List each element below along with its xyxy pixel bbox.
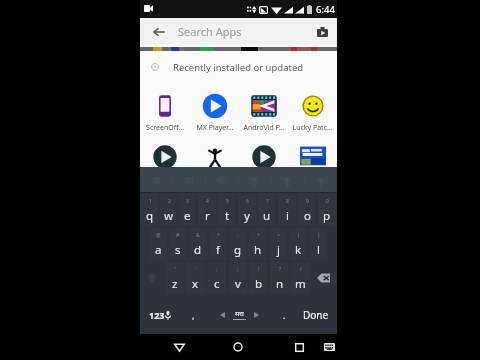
- button[interactable]: MX Player…: [190, 93, 239, 133]
- button[interactable]: /: [291, 262, 310, 294]
- staticText: ": [174, 266, 177, 273]
- staticText: r: [205, 208, 210, 224]
- button[interactable]: AndroVid P…: [239, 93, 288, 133]
- staticText: !: [258, 266, 260, 273]
- button[interactable]: ): [309, 228, 327, 260]
- staticText: c: [214, 276, 220, 292]
- staticText: 1: [149, 198, 152, 205]
- button[interactable]: Switch keyboard: [316, 334, 342, 360]
- staticText: u: [263, 208, 271, 224]
- staticText: Search Apps: [178, 24, 242, 39]
- staticText: 2: [168, 198, 171, 205]
- button[interactable]: =: [269, 228, 287, 260]
- button[interactable]: का: [172, 167, 205, 193]
- button[interactable]: 3: [179, 194, 196, 226]
- staticText: t: [225, 208, 230, 224]
- staticText: ,: [192, 309, 195, 321]
- staticText: e: [184, 208, 191, 224]
- button[interactable]: 8: [278, 194, 296, 226]
- staticText: कृ: [317, 174, 324, 186]
- button[interactable]: Lucky Patc…: [288, 93, 337, 133]
- button[interactable]: Back: [166, 334, 192, 360]
- staticText: z: [172, 276, 178, 292]
- button[interactable]: 6: [238, 194, 256, 226]
- staticText: 4: [206, 198, 209, 205]
- button[interactable]: !: [249, 262, 268, 294]
- staticText: v: [235, 276, 241, 292]
- button[interactable]: Play Store: [307, 18, 337, 45]
- staticText: f: [216, 242, 220, 258]
- staticText: /: [300, 266, 302, 273]
- staticText: 0: [326, 198, 329, 205]
- button[interactable]: ?: [270, 262, 289, 294]
- button[interactable]: [190, 144, 239, 170]
- staticText: q: [146, 208, 154, 224]
- button[interactable]: ': [186, 262, 205, 294]
- staticText: कु: [251, 174, 258, 186]
- button[interactable]: +: [249, 228, 267, 260]
- button[interactable]: कू: [271, 167, 304, 193]
- button[interactable]: ": [165, 262, 184, 294]
- button[interactable]: 2: [160, 194, 177, 226]
- button[interactable]: ,: [180, 295, 206, 334]
- staticText: w: [164, 208, 174, 224]
- staticText: y: [244, 208, 250, 224]
- button[interactable]: [288, 144, 337, 170]
- staticText: ;: [237, 266, 239, 273]
- staticText: b: [255, 276, 263, 292]
- staticText: n: [276, 276, 284, 292]
- button[interactable]: 4: [198, 194, 216, 226]
- button[interactable]: Recents: [286, 334, 312, 360]
- button[interactable]: कृ: [304, 167, 337, 193]
- staticText: AndroVid P…: [243, 123, 285, 133]
- button[interactable]: ;: [228, 262, 247, 294]
- staticText: j: [277, 242, 280, 258]
- staticText: Recently installed or updated: [173, 61, 304, 74]
- button[interactable]: :: [207, 262, 226, 294]
- staticText: -: [237, 232, 239, 239]
- button[interactable]: [140, 144, 190, 170]
- button[interactable]: क: [140, 167, 172, 193]
- staticText: की: [217, 174, 227, 186]
- staticText: 3: [186, 198, 189, 205]
- button[interactable]: 9: [298, 194, 316, 226]
- button[interactable]: Back: [140, 18, 178, 45]
- button[interactable]: कु: [238, 167, 271, 193]
- staticText: 7: [266, 198, 269, 205]
- button[interactable]: 5: [218, 194, 236, 226]
- button[interactable]: 0: [318, 194, 336, 226]
- button[interactable]: [239, 144, 288, 170]
- staticText: :: [216, 266, 218, 273]
- button[interactable]: 7: [258, 194, 276, 226]
- button[interactable]: -: [229, 228, 247, 260]
- button[interactable]: 1: [141, 194, 158, 226]
- staticText: मरा: [235, 309, 244, 319]
- staticText: का: [184, 174, 194, 186]
- button[interactable]: ScreenOff…: [140, 93, 190, 133]
- button[interactable]: &: [189, 228, 207, 260]
- staticText: 6:44: [316, 3, 335, 16]
- button[interactable]: Done: [295, 295, 337, 334]
- staticText: .: [283, 309, 286, 321]
- staticText: g: [234, 242, 242, 258]
- staticText: x: [192, 276, 199, 292]
- button[interactable]: #: [169, 228, 187, 260]
- button[interactable]: (: [289, 228, 307, 260]
- button[interactable]: Home: [225, 334, 251, 360]
- button[interactable]: .: [273, 295, 295, 334]
- staticText: MX Player…: [196, 123, 234, 133]
- button[interactable]: 123: [140, 295, 180, 334]
- staticText: 123: [149, 309, 165, 321]
- staticText: ': [195, 266, 197, 273]
- button[interactable]: Backspace: [311, 261, 337, 295]
- staticText: 8: [286, 198, 289, 205]
- button[interactable]: Search Apps: [178, 18, 307, 45]
- button[interactable]: *: [209, 228, 227, 260]
- staticText: s: [175, 242, 181, 258]
- staticText: d: [194, 242, 202, 258]
- button[interactable]: की: [205, 167, 238, 193]
- button[interactable]: Space: [206, 295, 273, 334]
- button[interactable]: @: [150, 228, 167, 260]
- staticText: ): [318, 232, 320, 239]
